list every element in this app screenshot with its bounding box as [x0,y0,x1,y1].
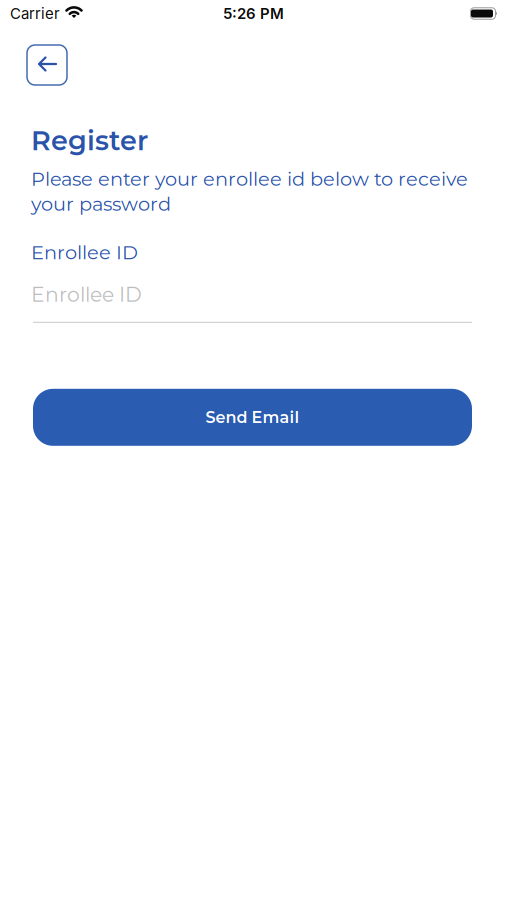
button[interactable]: Send Email [33,389,472,446]
staticText: Enrollee ID [31,240,138,264]
staticText: Please enter your enrollee id below to r… [31,167,468,215]
staticText: Register [31,124,148,157]
button[interactable]: Back [27,45,67,85]
staticText: 5:26 PM [223,4,284,23]
staticText: Enrollee ID [31,282,142,307]
staticText: Send Email [205,408,299,427]
staticText: Carrier [10,4,60,23]
